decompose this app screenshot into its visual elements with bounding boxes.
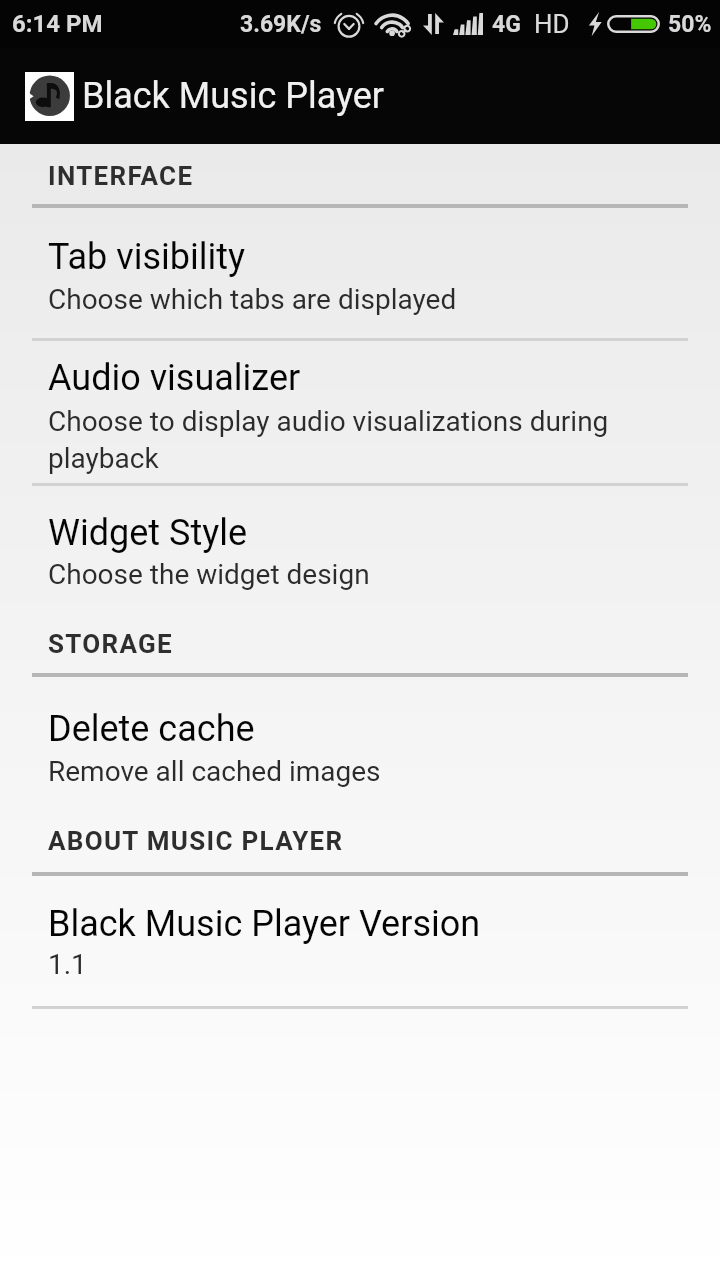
staticText: ABOUT MUSIC PLAYER bbox=[48, 826, 668, 856]
staticText: Delete cache bbox=[48, 708, 668, 750]
other: App icon bbox=[25, 72, 74, 121]
staticText: Audio visualizer bbox=[48, 357, 668, 399]
staticText: Remove all cached images bbox=[48, 755, 668, 788]
button[interactable] bbox=[0, 487, 720, 628]
staticText: Choose which tabs are displayed bbox=[48, 283, 668, 316]
button[interactable] bbox=[0, 341, 720, 484]
button[interactable] bbox=[0, 878, 720, 1006]
staticText: HD bbox=[534, 9, 570, 39]
staticText: 3.69K/s bbox=[240, 11, 322, 38]
staticText: INTERFACE bbox=[48, 161, 668, 191]
staticText: Choose the widget design bbox=[48, 558, 668, 591]
staticText: STORAGE bbox=[48, 629, 668, 659]
button[interactable] bbox=[0, 213, 720, 338]
staticText: 1.1 bbox=[48, 948, 668, 981]
staticText: 50% bbox=[668, 11, 712, 38]
button[interactable] bbox=[0, 681, 720, 823]
staticText: Black Music Player bbox=[82, 75, 385, 117]
staticText: 4G bbox=[492, 11, 521, 38]
staticText: Tab visibility bbox=[48, 236, 668, 278]
staticText: Widget Style bbox=[48, 512, 668, 554]
staticText: Choose to display audio visualizations d… bbox=[48, 405, 628, 475]
staticText: 6:14 PM bbox=[12, 10, 103, 38]
staticText: Black Music Player Version bbox=[48, 903, 668, 945]
